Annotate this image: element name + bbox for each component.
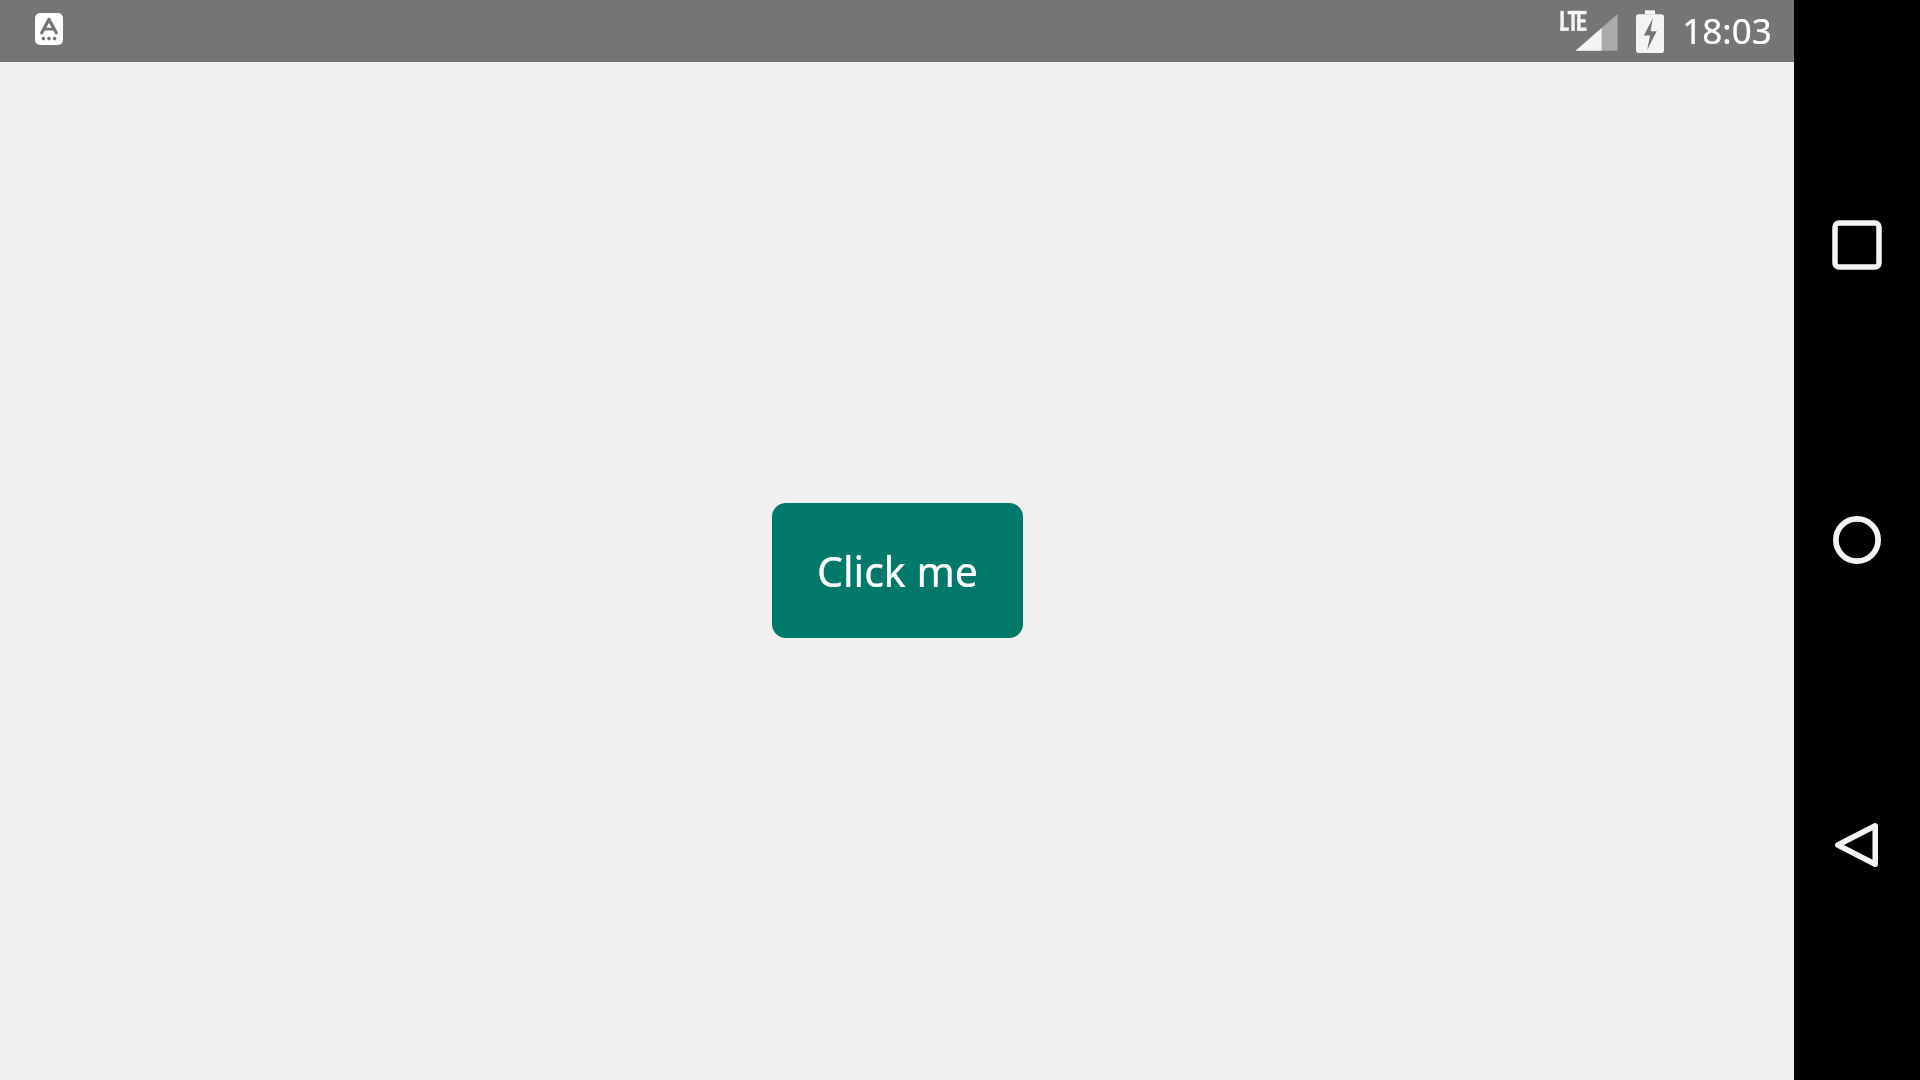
button[interactable]: Recent apps: [1801, 189, 1913, 301]
button[interactable]: Click me: [772, 503, 1023, 638]
button[interactable]: Back: [1801, 789, 1913, 901]
staticText: 18:03: [1682, 7, 1772, 55]
staticText: Click me: [817, 543, 978, 599]
button[interactable]: Home: [1801, 484, 1913, 596]
